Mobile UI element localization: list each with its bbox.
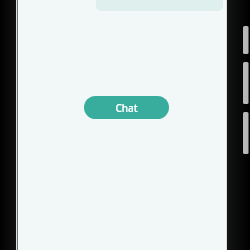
button[interactable]: Chat <box>84 96 169 119</box>
staticText: Chat <box>115 101 138 115</box>
